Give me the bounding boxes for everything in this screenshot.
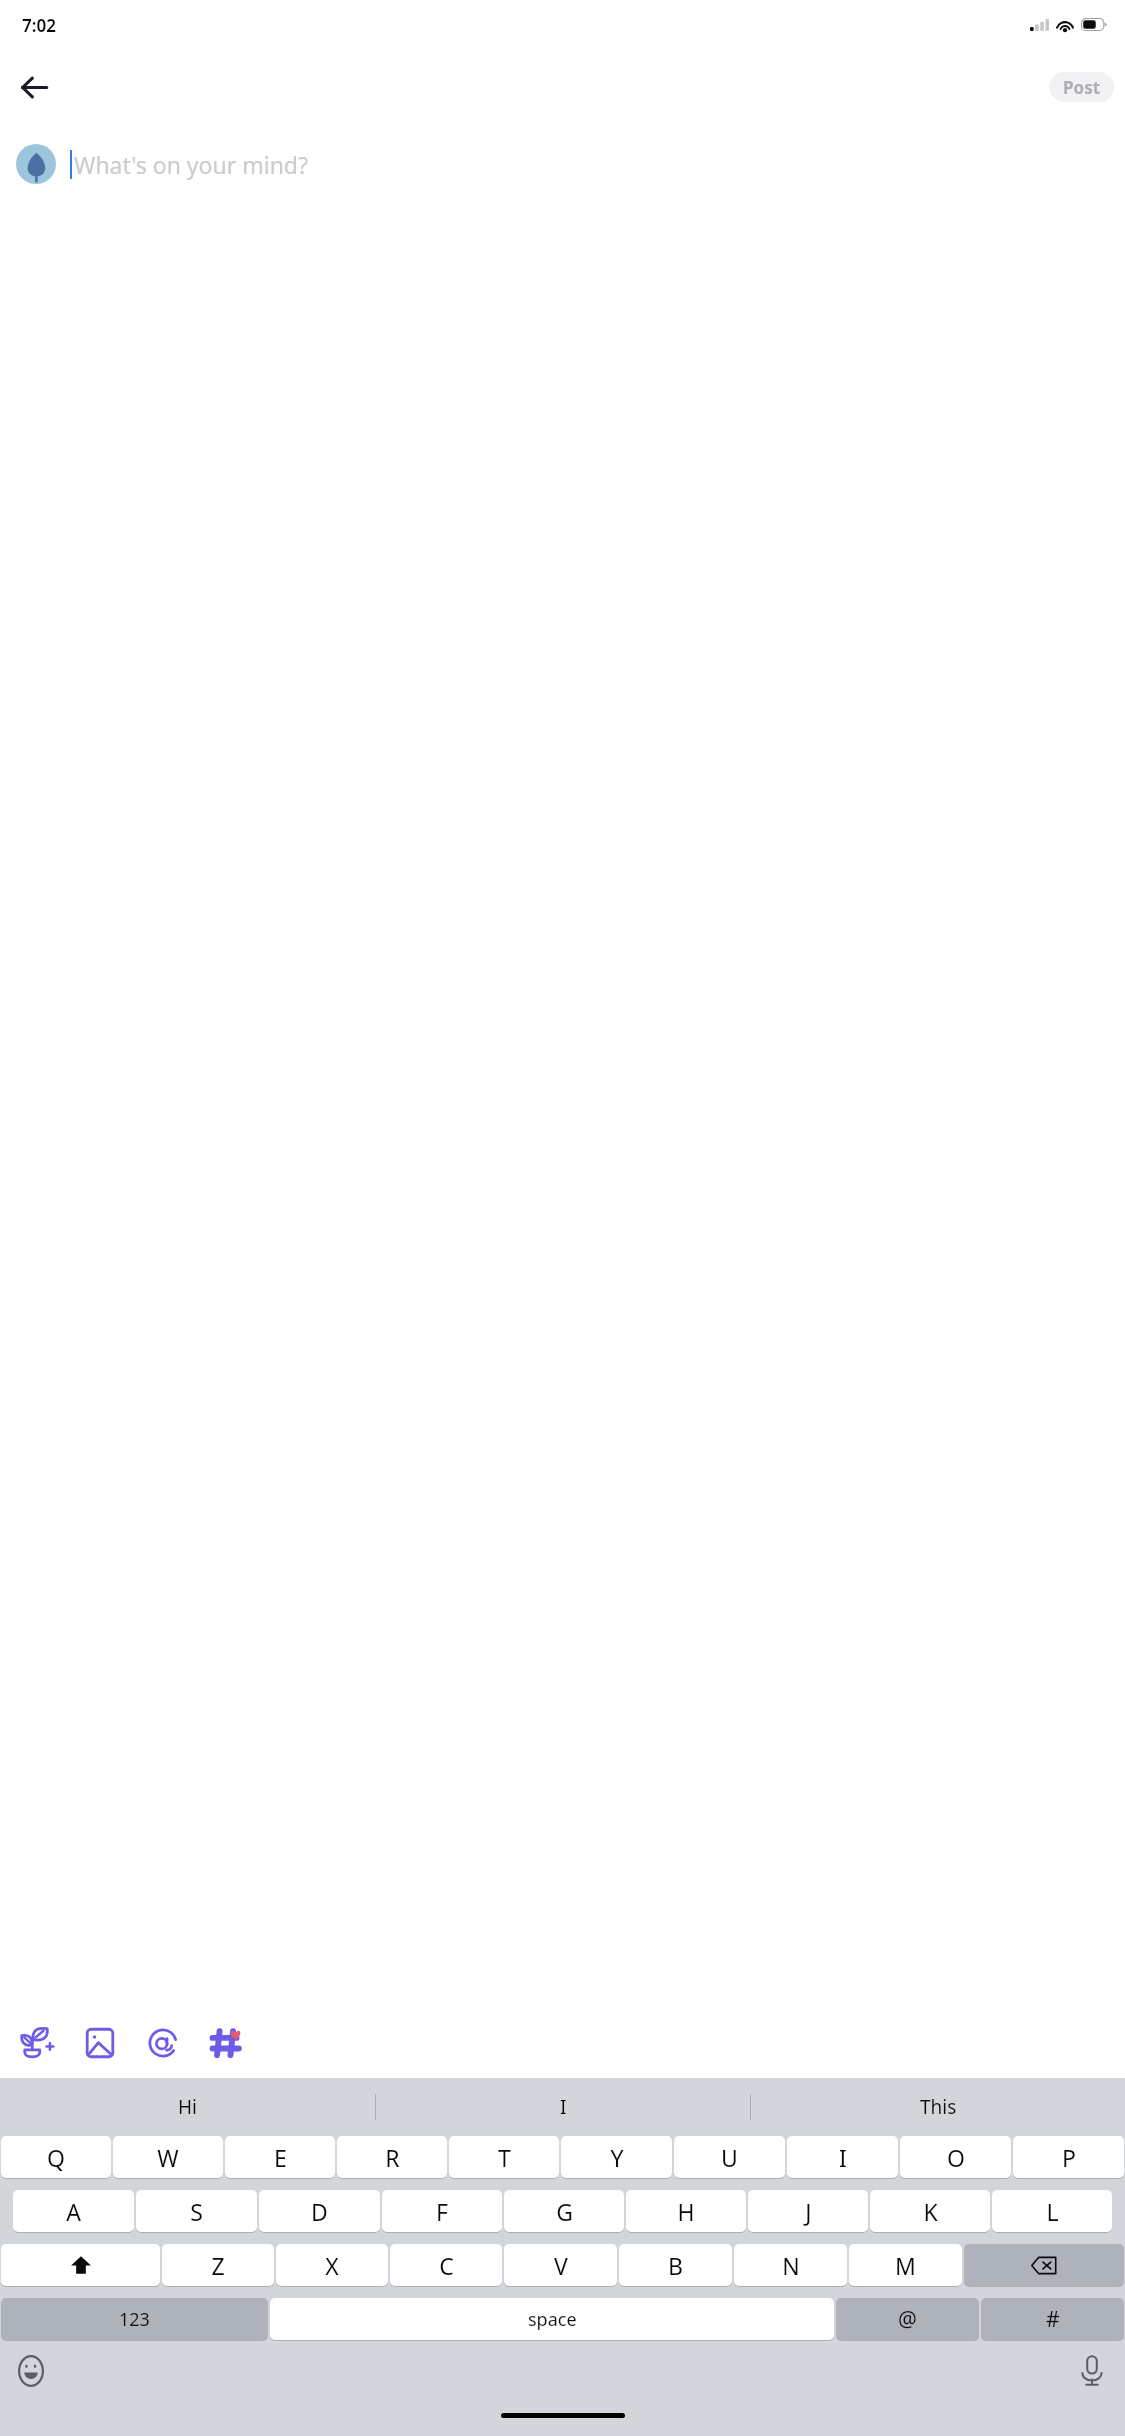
staticText: O xyxy=(947,2142,965,2173)
staticText: Z xyxy=(211,2250,225,2281)
staticText: Y xyxy=(610,2142,624,2173)
button[interactable]: V xyxy=(504,2244,617,2286)
button[interactable]: Mention xyxy=(136,2016,190,2070)
staticText: S xyxy=(190,2196,203,2227)
button[interactable]: L xyxy=(992,2190,1112,2232)
staticText: H xyxy=(677,2196,695,2227)
staticText: space xyxy=(528,2307,577,2332)
staticText: Q xyxy=(47,2142,65,2173)
button[interactable]: Add plant xyxy=(10,2016,64,2070)
staticText: F xyxy=(436,2196,448,2227)
staticText: N xyxy=(782,2250,800,2281)
button[interactable]: W xyxy=(113,2136,223,2178)
staticText: What's on your mind? xyxy=(74,149,308,180)
staticText: J xyxy=(805,2196,812,2227)
button[interactable]: # xyxy=(981,2298,1124,2340)
staticText: V xyxy=(554,2250,568,2281)
button[interactable]: Backspace xyxy=(964,2244,1124,2286)
button[interactable]: N xyxy=(734,2244,847,2286)
staticText: @ xyxy=(898,2305,917,2334)
staticText: Hi xyxy=(178,2094,197,2120)
staticText: R xyxy=(385,2142,400,2173)
button[interactable]: Emoji xyxy=(8,2348,54,2394)
button[interactable]: This xyxy=(751,2078,1125,2136)
button[interactable]: Q xyxy=(1,2136,111,2178)
staticText: # xyxy=(1046,2305,1060,2334)
staticText: T xyxy=(498,2142,511,2173)
button[interactable]: Add tag xyxy=(199,2016,253,2070)
button[interactable]: O xyxy=(900,2136,1011,2178)
staticText: Post xyxy=(1063,76,1101,99)
button[interactable]: Post xyxy=(1049,72,1114,102)
staticText: U xyxy=(721,2142,738,2173)
staticText: C xyxy=(439,2250,454,2281)
staticText: X xyxy=(325,2250,339,2281)
staticText: This xyxy=(920,2094,957,2120)
staticText: I xyxy=(560,2094,567,2120)
button[interactable]: C xyxy=(390,2244,502,2286)
button[interactable]: R xyxy=(337,2136,447,2178)
button[interactable]: Add image xyxy=(73,2016,127,2070)
button[interactable]: J xyxy=(748,2190,868,2232)
button[interactable]: 123 xyxy=(1,2298,268,2340)
button[interactable]: K xyxy=(870,2190,990,2232)
staticText: E xyxy=(274,2142,287,2173)
button[interactable]: Back xyxy=(6,59,62,115)
button[interactable]: Hi xyxy=(0,2078,375,2136)
button[interactable]: Z xyxy=(162,2244,274,2286)
staticText: I xyxy=(839,2142,847,2173)
staticText: B xyxy=(668,2250,683,2281)
staticText: W xyxy=(157,2142,179,2173)
button[interactable]: Shift xyxy=(1,2244,160,2286)
staticText: K xyxy=(923,2196,938,2227)
staticText: L xyxy=(1046,2196,1059,2227)
button[interactable]: I xyxy=(376,2078,750,2136)
button[interactable]: H xyxy=(626,2190,746,2232)
staticText: 7:02 xyxy=(22,14,56,37)
button[interactable]: E xyxy=(225,2136,335,2178)
staticText: D xyxy=(311,2196,328,2227)
staticText: M xyxy=(895,2250,916,2281)
button[interactable]: G xyxy=(504,2190,624,2232)
button[interactable]: I xyxy=(787,2136,898,2178)
button[interactable]: Y xyxy=(561,2136,672,2178)
staticText: A xyxy=(66,2196,81,2227)
button[interactable]: B xyxy=(619,2244,732,2286)
button[interactable]: space xyxy=(270,2298,834,2340)
button[interactable]: S xyxy=(136,2190,257,2232)
staticText: P xyxy=(1062,2142,1076,2173)
button[interactable]: Voice input xyxy=(1069,2348,1115,2394)
button[interactable]: U xyxy=(674,2136,785,2178)
button[interactable]: M xyxy=(849,2244,962,2286)
button[interactable]: T xyxy=(449,2136,559,2178)
button[interactable]: A xyxy=(13,2190,134,2232)
button[interactable]: F xyxy=(382,2190,502,2232)
staticText: G xyxy=(556,2196,573,2227)
button[interactable]: D xyxy=(259,2190,380,2232)
button[interactable]: X xyxy=(276,2244,388,2286)
button[interactable]: P xyxy=(1013,2136,1124,2178)
button[interactable]: @ xyxy=(836,2298,979,2340)
staticText: 123 xyxy=(119,2307,150,2332)
